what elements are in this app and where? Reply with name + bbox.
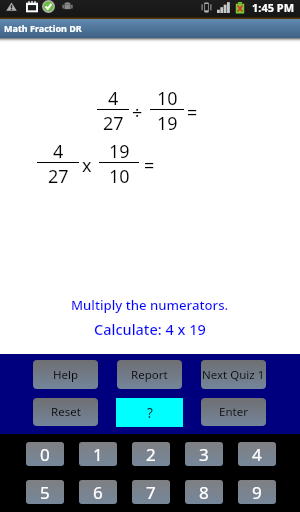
button[interactable]: 0 [26,442,64,466]
button[interactable]: 9 [238,480,276,504]
staticText: 6 [93,481,103,504]
staticText: 19 [157,111,178,136]
staticText: 4 [108,86,119,111]
staticText: 4 [252,443,262,466]
staticText: Calculate: 4 x 19 [94,319,206,339]
button[interactable]: 3 [185,442,223,466]
button[interactable]: 4 [238,442,276,466]
staticText: 0 [40,443,50,466]
button[interactable]: 8 [185,480,223,504]
button[interactable]: 2 [132,442,170,466]
button[interactable]: Help [33,360,98,389]
staticText: 8 [199,481,209,504]
staticText: 9 [252,481,262,504]
staticText: Help [53,367,79,383]
button[interactable]: 6 [79,480,117,504]
staticText: 3 [199,443,209,466]
button[interactable]: Next Quiz 1 [201,360,266,389]
staticText: 4 [53,139,64,164]
button[interactable]: ? [116,398,183,427]
button[interactable]: Enter [201,398,266,426]
staticText: Enter [219,404,248,420]
staticText: Multiply the numerators. [71,296,229,314]
button[interactable]: 5 [26,480,64,504]
button[interactable]: 1 [79,442,117,466]
staticText: Report [131,367,168,383]
staticText: 10 [157,86,178,111]
staticText: Reset [51,404,81,420]
button[interactable]: Reset [33,398,98,426]
staticText: Next Quiz 1 [202,367,265,383]
staticText: 1 [93,443,103,466]
staticText: = [144,153,155,178]
staticText: ÷ [132,100,143,125]
staticText: Math Fraction DR [4,22,82,34]
staticText: x [82,153,92,178]
staticText: 5 [40,481,50,504]
button[interactable]: Report [117,360,182,389]
staticText: = [187,100,198,125]
button[interactable]: 7 [132,480,170,504]
staticText: 27 [103,111,124,136]
staticText: 7 [146,481,156,504]
staticText: 19 [109,139,130,164]
staticText: 2 [146,443,156,466]
staticText: 1:45 PM [252,0,295,15]
staticText: ? [147,404,153,422]
staticText: 10 [109,164,130,189]
staticText: 27 [48,164,69,189]
